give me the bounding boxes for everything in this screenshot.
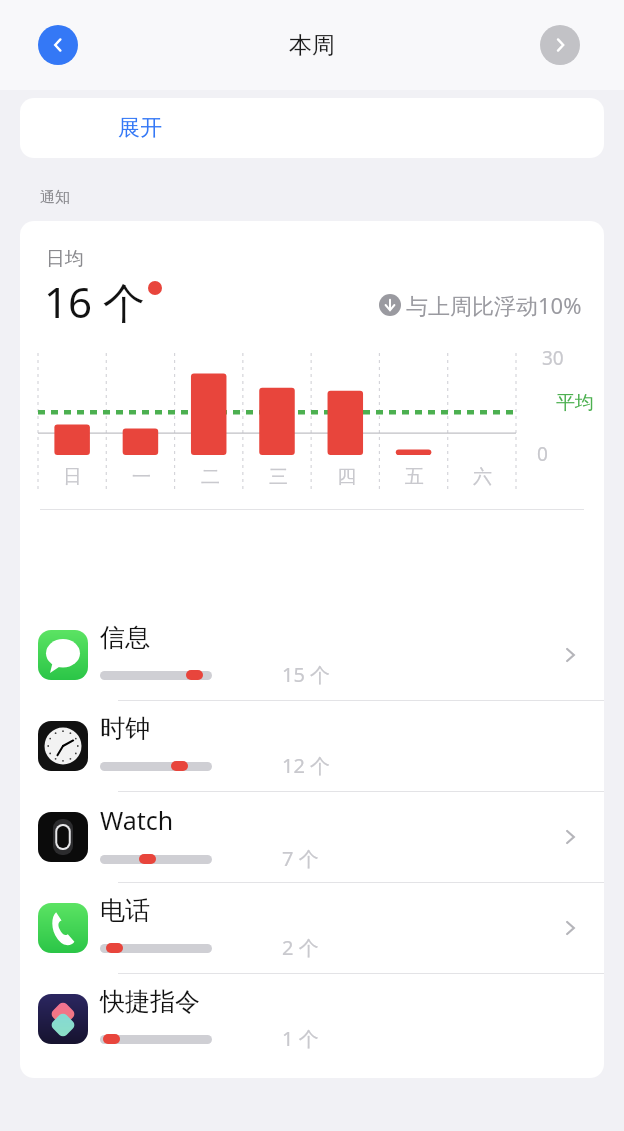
staticText: 三 (269, 465, 288, 489)
staticText: 12 个 (282, 752, 331, 779)
staticText: 快捷指令 (100, 986, 200, 1017)
button[interactable]: 信息 (20, 610, 604, 700)
staticText: 7 个 (282, 845, 319, 872)
button[interactable]: Watch (20, 792, 604, 882)
staticText: 15 个 (282, 661, 331, 688)
staticText: 与上周比浮动10% (406, 290, 582, 320)
staticText: Watch (100, 803, 174, 837)
button[interactable]: 快捷指令 (20, 974, 604, 1064)
staticText: 0 (537, 441, 548, 467)
button[interactable]: 电话 (20, 883, 604, 973)
staticText: 日均 (46, 247, 84, 271)
staticText: 四 (337, 465, 356, 489)
staticText: 30 (542, 345, 564, 371)
staticText: 1 个 (282, 1025, 319, 1052)
staticText: 时钟 (100, 713, 150, 744)
staticText: 日 (63, 465, 82, 489)
staticText: 信息 (100, 622, 150, 653)
staticText: 平均 (556, 391, 594, 415)
staticText: 六 (473, 465, 492, 489)
staticText: 2 个 (282, 934, 319, 961)
staticText: 一 (132, 465, 151, 489)
button[interactable]: Forward (540, 25, 580, 65)
staticText: 电话 (100, 895, 150, 926)
staticText: 二 (201, 465, 220, 489)
staticText: 五 (405, 465, 424, 489)
button[interactable]: 时钟 (20, 701, 604, 791)
staticText: 16 个 (44, 273, 145, 327)
button[interactable]: Back (38, 25, 78, 65)
button[interactable]: 展开 (118, 114, 162, 142)
staticText: 本周 (289, 31, 335, 60)
staticText: 通知 (40, 188, 70, 207)
